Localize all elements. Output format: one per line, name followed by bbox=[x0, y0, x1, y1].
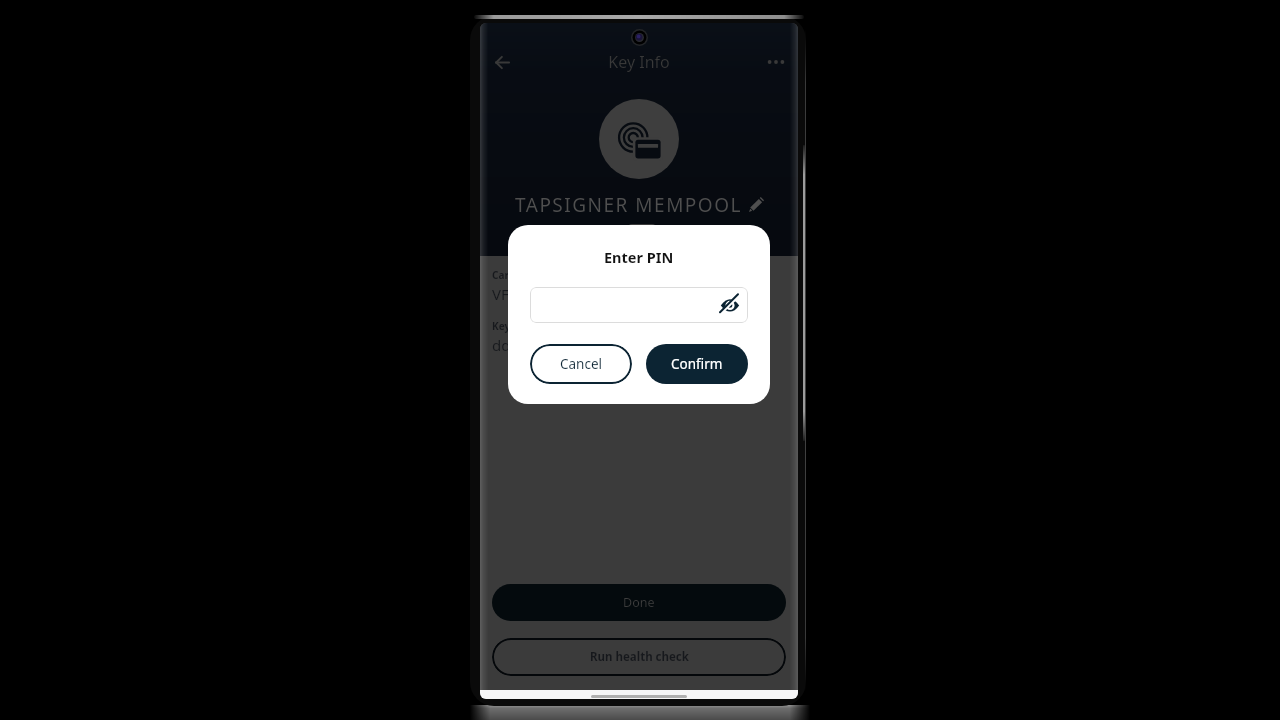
staticText: VFRWZ-BPQHB-RK4QW-VQRLL bbox=[492, 284, 705, 304]
button[interactable]: More options bbox=[754, 40, 798, 84]
button[interactable]: Run health check bbox=[492, 638, 786, 676]
staticText: Confirm bbox=[671, 355, 723, 373]
button[interactable]: Show PIN bbox=[719, 294, 741, 316]
staticText: Enter PIN bbox=[604, 247, 674, 267]
staticText: Key Info bbox=[524, 51, 754, 73]
staticText: Card ident bbox=[492, 268, 544, 282]
button[interactable]: Done bbox=[492, 584, 786, 621]
staticText: dd19d4ad bbox=[492, 335, 564, 355]
button[interactable]: Cancel bbox=[530, 344, 632, 384]
button[interactable]: Show PIN bbox=[530, 287, 748, 323]
button[interactable]: Edit name bbox=[748, 197, 764, 213]
staticText: Key bbox=[492, 319, 511, 333]
button[interactable]: Back bbox=[480, 40, 524, 84]
staticText: Run health check bbox=[590, 649, 689, 665]
staticText: Done bbox=[623, 594, 655, 611]
staticText: Cancel bbox=[560, 355, 603, 373]
button[interactable]: Card status bbox=[628, 224, 656, 246]
button[interactable]: Confirm bbox=[646, 344, 748, 384]
staticText: TAPSIGNER MEMPOOL bbox=[515, 192, 742, 218]
